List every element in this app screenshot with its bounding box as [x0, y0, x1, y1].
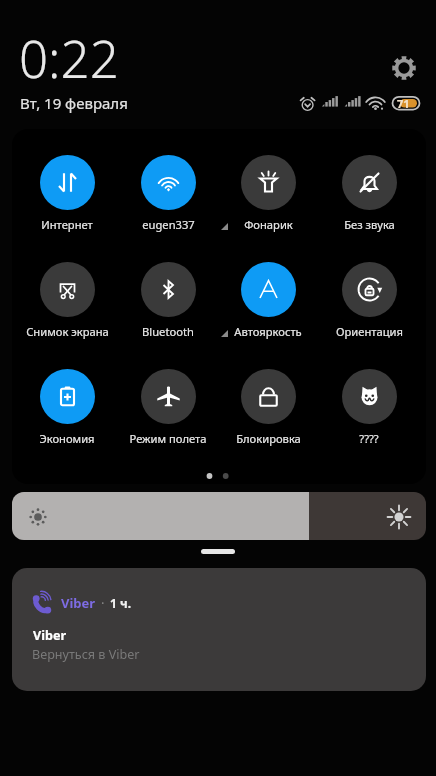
staticText: eugen337 [142, 217, 195, 232]
staticText: Вт, 19 февраля [20, 93, 128, 113]
staticText: Интернет [41, 217, 93, 232]
staticText: Bluetooth [142, 324, 194, 339]
button[interactable]: Viber [12, 568, 426, 691]
staticText: 0:22 [19, 23, 119, 92]
staticText: 71 [397, 96, 410, 111]
staticText: Экономия [39, 431, 95, 446]
staticText: Без звука [344, 217, 395, 232]
staticText: Автояркость [234, 324, 302, 339]
staticText: · [101, 594, 105, 612]
staticText: Фонарик [244, 217, 293, 232]
button[interactable]: eugen337 [118, 155, 218, 232]
staticText: ???? [359, 431, 379, 446]
staticText: Режим полета [129, 431, 207, 446]
button[interactable]: Интернет [17, 155, 117, 232]
button[interactable] [12, 492, 426, 540]
button[interactable]: Режим полета [118, 369, 218, 446]
staticText: Viber [33, 627, 67, 644]
button[interactable]: Bluetooth [118, 262, 218, 339]
button[interactable]: ???? [319, 369, 419, 446]
button[interactable]: Фонарик [218, 155, 318, 232]
button[interactable]: Автояркость [218, 262, 318, 339]
staticText: Вернуться в Viber [32, 646, 140, 663]
staticText: Viber [61, 594, 96, 612]
button[interactable]: Блокировка [218, 369, 318, 446]
staticText: Блокировка [236, 431, 301, 446]
button[interactable]: Экономия [17, 369, 117, 446]
button[interactable]: Ориентация [319, 262, 419, 339]
staticText: Ориентация [336, 324, 403, 339]
button[interactable]: Без звука [319, 155, 419, 232]
button[interactable]: Settings [388, 52, 420, 84]
staticText: 1 ч. [110, 595, 132, 611]
button[interactable]: Снимок экрана [17, 262, 117, 339]
staticText: Снимок экрана [26, 324, 109, 339]
